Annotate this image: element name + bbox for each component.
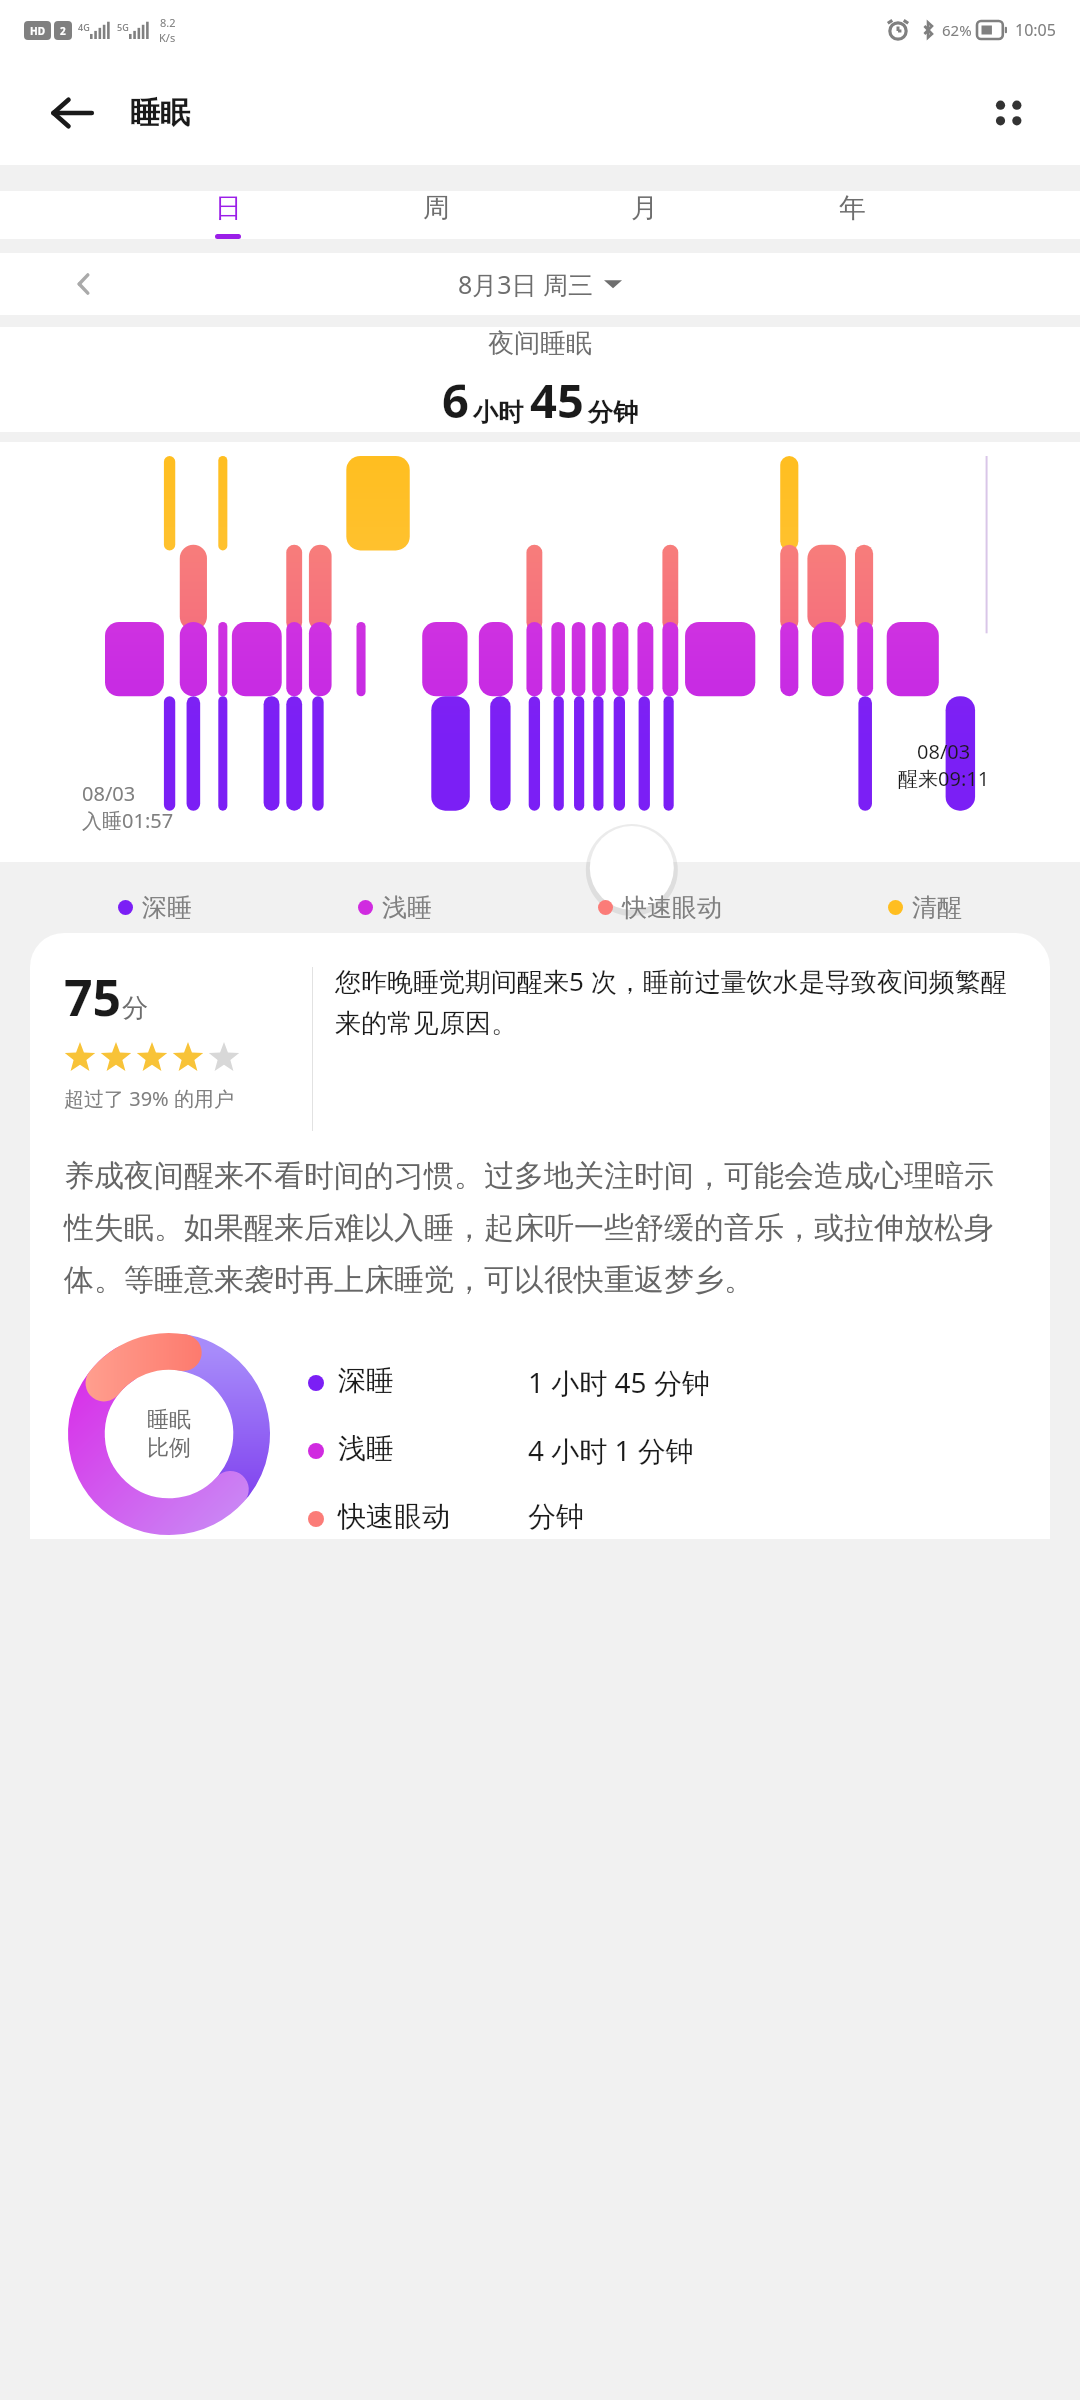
staticText: 深睡 <box>338 1363 528 1398</box>
staticText: 08/03 <box>82 780 136 807</box>
button[interactable]: Previous day <box>60 260 108 308</box>
staticText: 小时 <box>473 397 523 428</box>
staticText: 4 小时 1 分钟 <box>528 1431 1016 1469</box>
staticText: 分钟 <box>528 1499 1016 1534</box>
staticText: K/s <box>159 30 176 45</box>
button[interactable]: 深睡 <box>118 892 192 923</box>
button[interactable]: 8月3日 周三 <box>458 267 622 301</box>
staticText: 快速眼动 <box>622 892 722 923</box>
button[interactable]: 年 <box>814 191 890 239</box>
staticText: 2 <box>60 24 66 38</box>
staticText: 10:05 <box>1015 19 1056 41</box>
staticText: 分 <box>122 992 148 1025</box>
staticText: 1 小时 45 分钟 <box>528 1363 1016 1401</box>
staticText: 日 <box>215 191 242 225</box>
staticText: HD <box>30 24 45 38</box>
staticText: 深睡 <box>142 892 192 923</box>
staticText: 分钟 <box>588 397 638 428</box>
staticText: 周 <box>423 191 450 225</box>
staticText: 8月3日 周三 <box>458 267 594 301</box>
button[interactable]: 浅睡 <box>358 892 432 923</box>
staticText: 您昨晚睡觉期间醒来5 次，睡前过量饮水是导致夜间频繁醒来的常见原因。 <box>335 963 1016 1040</box>
staticText: 08/03 <box>917 738 971 765</box>
staticText: 5G <box>117 21 129 33</box>
staticText: 入睡01:57 <box>82 807 174 834</box>
button[interactable]: 深睡 <box>308 1363 1016 1401</box>
button[interactable]: Back <box>36 77 108 149</box>
button[interactable]: 月 <box>606 191 682 239</box>
staticText: 月 <box>631 191 658 225</box>
button[interactable]: 快速眼动 <box>598 892 722 923</box>
staticText: 75 <box>64 963 122 1031</box>
staticText: 6 <box>442 368 469 432</box>
staticText: 清醒 <box>912 892 962 923</box>
staticText: 养成夜间醒来不看时间的习惯。过多地关注时间，可能会造成心理暗示性失眠。如果醒来后… <box>64 1157 1016 1299</box>
button[interactable]: 快速眼动 <box>308 1499 1016 1534</box>
staticText: 年 <box>839 191 866 225</box>
button[interactable]: 日 <box>190 191 266 239</box>
staticText: 快速眼动 <box>338 1499 528 1534</box>
staticText: 4G <box>78 21 90 33</box>
staticText: 醒来09:11 <box>898 765 990 792</box>
staticText: 睡眠 <box>130 94 190 132</box>
button[interactable]: 浅睡 <box>308 1431 1016 1469</box>
staticText: 超过了 39% 的用户 <box>64 1085 234 1112</box>
button[interactable]: 周 <box>398 191 474 239</box>
staticText: 夜间睡眠 <box>488 327 592 360</box>
staticText: 62% <box>942 20 972 40</box>
staticText: 比例 <box>147 1434 191 1462</box>
staticText: 睡眠 <box>147 1406 191 1434</box>
staticText: 8.2 <box>160 15 176 30</box>
button[interactable]: 清醒 <box>888 892 962 923</box>
button[interactable]: More options <box>972 77 1044 149</box>
staticText: 45 <box>530 368 584 432</box>
staticText: 浅睡 <box>382 892 432 923</box>
staticText: 浅睡 <box>338 1431 528 1466</box>
